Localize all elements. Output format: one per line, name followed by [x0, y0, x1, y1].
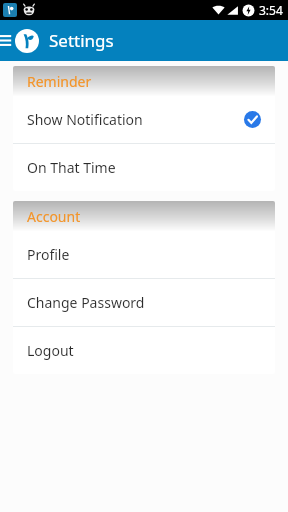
- staticText: Settings: [49, 29, 114, 52]
- staticText: Change Password: [27, 293, 261, 312]
- button[interactable]: Open navigation drawer: [0, 20, 14, 61]
- other: Enabled: [244, 111, 261, 128]
- button[interactable]: Profile: [13, 231, 275, 278]
- button[interactable]: Logout: [13, 327, 275, 374]
- staticText: Logout: [27, 341, 261, 360]
- button[interactable]: Change Password: [13, 279, 275, 326]
- staticText: Reminder: [27, 72, 92, 91]
- staticText: Account: [27, 207, 81, 226]
- staticText: Profile: [27, 245, 261, 264]
- staticText: Show Notification: [27, 110, 244, 129]
- staticText: 3:54: [259, 2, 283, 18]
- button[interactable]: Show Notification: [13, 96, 275, 143]
- staticText: On That Time: [27, 158, 261, 177]
- button[interactable]: On That Time: [13, 144, 275, 191]
